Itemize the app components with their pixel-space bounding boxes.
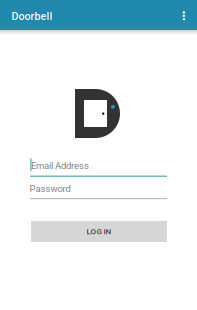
button[interactable]: LOG IN xyxy=(31,221,167,242)
staticText: Email Address xyxy=(31,160,89,171)
staticText: LOG IN xyxy=(86,227,111,236)
staticText: Doorbell xyxy=(11,10,52,22)
button[interactable]: More options xyxy=(172,1,196,31)
staticText: Password xyxy=(30,183,71,194)
